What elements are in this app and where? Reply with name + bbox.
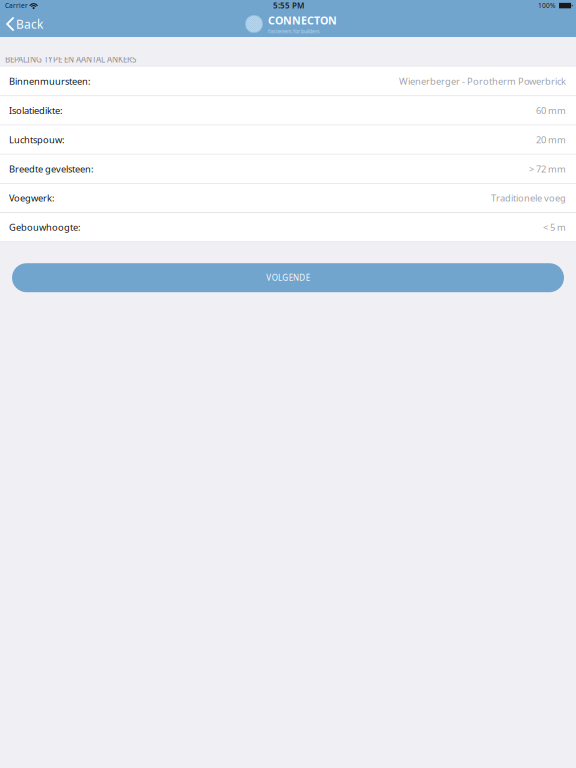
staticText: Wienerberger - Porotherm Powerbrick [399,75,566,87]
staticText: Luchtspouw: [9,133,65,146]
button[interactable]: Binnenmuursteen: [0,67,576,96]
staticText: 20 mm [536,133,566,146]
staticText: Back [16,16,43,32]
staticText: Binnenmuursteen: [9,75,91,87]
staticText: Breedte gevelsteen: [9,163,94,175]
staticText: 100% [538,1,556,10]
staticText: < 5 m [543,221,566,233]
button[interactable]: Gebouwhoogte: [0,213,576,242]
staticText: VOLGENDE [266,272,310,283]
staticText: BEPALING TYPE EN AANTAL ANKERS [5,54,136,65]
button[interactable]: VOLGENDE [12,263,564,292]
staticText: Traditionele voeg [491,192,566,204]
staticText: CONNECTON [268,13,337,28]
button[interactable]: Voegwerk: [0,184,576,213]
staticText: Isolatiedikte: [9,104,63,117]
button[interactable]: Luchtspouw: [0,125,576,155]
staticText: Gebouwhoogte: [9,221,81,233]
staticText: Voegwerk: [9,192,55,204]
staticText: 60 mm [536,104,566,117]
staticText: fasteners for builders [268,27,320,35]
button[interactable]: Back [0,11,51,37]
staticText: 5:55 PM [273,0,304,11]
button[interactable]: Isolatiedikte: [0,96,576,125]
staticText: > 72 mm [529,163,566,175]
button[interactable]: Breedte gevelsteen: [0,155,576,184]
staticText: Carrier [5,1,28,10]
